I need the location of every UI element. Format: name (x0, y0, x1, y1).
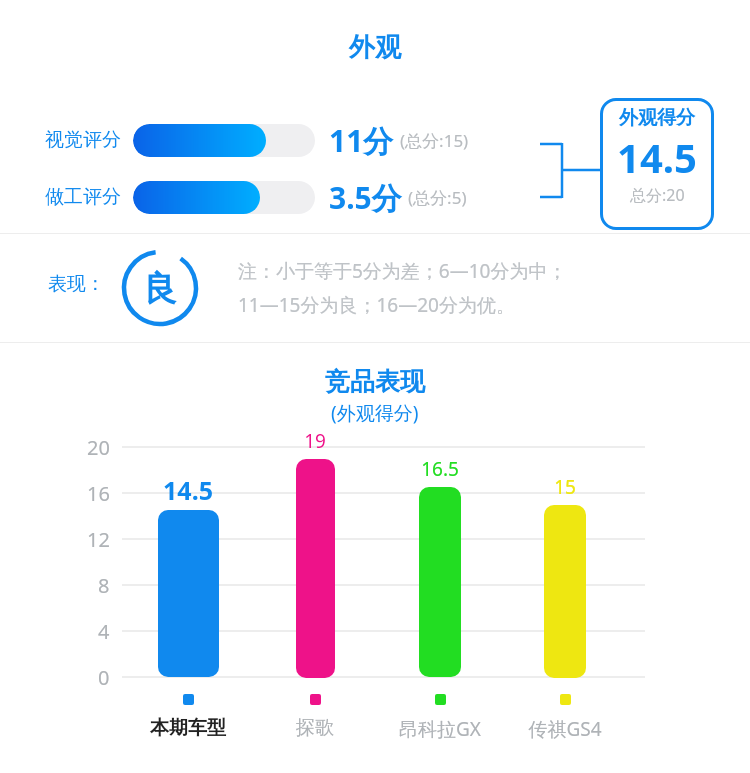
staticText: 表现： (48, 272, 105, 296)
button[interactable]: 传祺GS4 15 (544, 505, 586, 678)
staticText: 0 (98, 664, 110, 691)
button[interactable]: 探歌 (255, 694, 375, 740)
staticText: 14.5 (617, 130, 697, 184)
staticText: 4 (98, 618, 110, 645)
staticText: 做工评分 (45, 185, 121, 209)
staticText: 外观 (349, 31, 401, 64)
button[interactable]: 本期车型 (128, 694, 248, 740)
staticText: 20 (87, 434, 110, 461)
staticText: 12 (87, 526, 110, 553)
button[interactable]: 做工评分 (0, 175, 750, 219)
staticText: 视觉评分 (45, 128, 121, 152)
staticText: 19 (304, 428, 326, 454)
button[interactable]: 本期车型 14.5 (158, 510, 219, 677)
staticText: (总分:5) (408, 186, 467, 209)
button[interactable]: 表现： (48, 272, 105, 296)
button[interactable]: 传祺GS4 (505, 694, 625, 742)
staticText: 本期车型 (150, 716, 226, 740)
staticText: 15 (554, 474, 576, 500)
staticText: 11分 (329, 120, 394, 161)
staticText: 良 (143, 267, 177, 310)
staticText: 14.5 (163, 473, 213, 507)
staticText: 3.5分 (329, 177, 402, 218)
staticText: 16.5 (421, 456, 459, 482)
staticText: 11—15分为良；16—20分为优。 (238, 292, 515, 318)
staticText: 16 (87, 480, 110, 507)
staticText: 8 (98, 572, 110, 599)
staticText: 外观得分 (619, 106, 695, 130)
button[interactable]: 视觉评分 (0, 118, 750, 162)
staticText: (总分:15) (400, 129, 469, 152)
button[interactable]: 昂科拉GX (380, 694, 500, 742)
staticText: 总分:20 (630, 184, 685, 206)
staticText: 探歌 (296, 716, 334, 740)
staticText: (外观得分) (331, 400, 419, 426)
button[interactable]: 探歌 19 (296, 459, 335, 678)
button[interactable]: 良 评级 (121, 249, 199, 327)
staticText: 注：小于等于5分为差；6—10分为中； (238, 258, 567, 284)
staticText: 传祺GS4 (528, 716, 602, 742)
button[interactable]: 昂科拉GX 16.5 (419, 487, 461, 677)
staticText: 竞品表现 (325, 366, 425, 397)
staticText: 昂科拉GX (399, 716, 481, 742)
button[interactable]: 外观得分 (600, 98, 714, 230)
